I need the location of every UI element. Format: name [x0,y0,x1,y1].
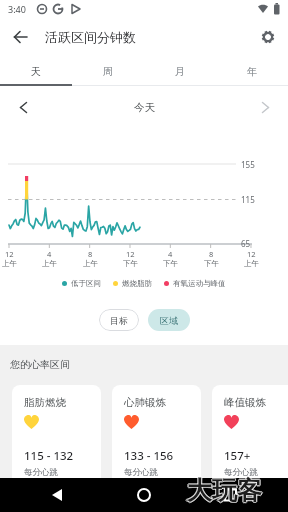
staticText: 133 - 156 [124,448,174,464]
staticText: 目标 [110,315,128,326]
staticText: 12 [247,249,256,259]
staticText: 65 [241,238,251,249]
button[interactable] [254,96,276,118]
staticText: 上午 [244,259,259,268]
staticText: 脂肪燃烧 [24,396,66,409]
staticText: 每分心跳 [124,467,158,478]
button[interactable]: 月 [144,56,216,86]
button[interactable]: 目标 [99,309,139,331]
staticText: 157+ [224,448,251,464]
button[interactable] [124,478,164,512]
staticText: 115 [241,194,255,205]
button[interactable] [8,25,32,49]
staticText: 下午 [204,259,219,268]
staticText: 8 [209,249,214,259]
button[interactable]: 脂肪燃烧 [12,385,101,495]
staticText: 大玩客 [187,475,262,506]
staticText: 活跃区间分钟数 [45,29,136,45]
staticText: 有氧运动与峰值 [173,279,226,288]
button[interactable]: 天 [0,56,72,86]
staticText: 12 [5,249,14,259]
staticText: 大玩客 [187,474,262,505]
button[interactable] [208,478,248,512]
staticText: 155 [241,159,255,170]
staticText: 8 [88,249,93,259]
staticText: 下午 [123,259,138,268]
staticText: 3:40 [8,3,26,15]
staticText: 每分心跳 [224,467,258,478]
staticText: 大玩客 [188,475,263,506]
staticText: 4 [47,249,52,259]
staticText: 月 [175,65,185,78]
staticText: 天 [31,65,41,78]
staticText: 您的心率区间 [10,358,70,371]
staticText: 心肺锻炼 [124,396,166,409]
button[interactable]: 心肺锻炼 [112,385,201,495]
button[interactable]: 周 [72,56,144,86]
staticText: 下午 [163,259,178,268]
staticText: 115 - 132 [24,448,74,464]
staticText: 每分心跳 [24,467,58,478]
button[interactable] [40,478,80,512]
staticText: 4 [168,249,173,259]
staticText: 低于区间 [71,279,101,288]
staticText: 峰值锻炼 [224,396,266,409]
staticText: 大玩客 [186,475,261,506]
button[interactable]: 年 [216,56,288,86]
button[interactable] [12,96,34,118]
staticText: 燃烧脂肪 [122,279,152,288]
button[interactable]: 峰值锻炼 [212,385,288,495]
button[interactable] [256,25,280,49]
staticText: 年 [247,65,257,78]
staticText: 大玩客 [187,476,262,507]
staticText: 上午 [42,259,57,268]
staticText: 区域 [160,315,178,326]
staticText: 上午 [83,259,98,268]
staticText: 今天 [134,101,155,114]
staticText: 12 [126,249,135,259]
staticText: 周 [103,65,113,78]
staticText: 上午 [2,259,17,268]
button[interactable]: 区域 [148,309,190,331]
